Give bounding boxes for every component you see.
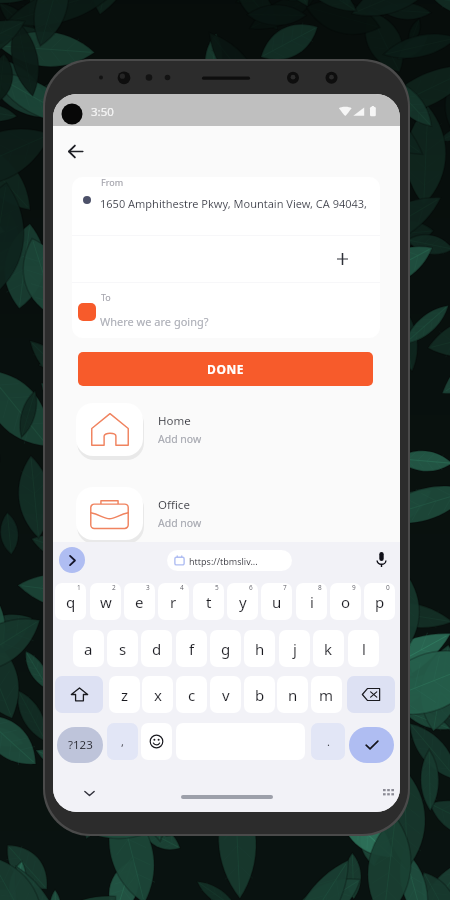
button[interactable]: Emoji	[141, 723, 172, 760]
staticText: 4	[180, 583, 184, 592]
button[interactable]: w	[90, 583, 121, 620]
button[interactable]: h	[244, 630, 275, 667]
staticText: To	[101, 291, 111, 303]
staticText: y	[239, 592, 247, 612]
staticText: r	[170, 592, 177, 612]
staticText: 5	[215, 583, 219, 592]
button[interactable]: DONE	[78, 352, 373, 386]
button[interactable]: Backspace	[347, 676, 395, 713]
button[interactable]: z	[109, 676, 140, 713]
staticText: l	[362, 639, 366, 659]
button[interactable]: s	[107, 630, 138, 667]
staticText: q	[66, 592, 76, 612]
button[interactable]: Office	[68, 478, 318, 549]
button[interactable]: Next suggestion	[59, 547, 85, 573]
staticText: Add now	[158, 432, 202, 446]
button[interactable]: e	[124, 583, 155, 620]
button[interactable]: p	[364, 583, 395, 620]
button[interactable]: g	[210, 630, 241, 667]
button[interactable]: x	[142, 676, 173, 713]
button[interactable]: d	[141, 630, 172, 667]
staticText: v	[222, 685, 230, 705]
button[interactable]: Shift	[55, 676, 103, 713]
button[interactable]: a	[73, 630, 104, 667]
button[interactable]: r	[158, 583, 189, 620]
staticText: 6	[249, 583, 253, 592]
staticText: Where we are going?	[100, 314, 209, 329]
button[interactable]: Add stop	[330, 247, 354, 271]
button[interactable]: k	[313, 630, 344, 667]
staticText: o	[341, 592, 351, 612]
staticText: ,	[121, 734, 124, 749]
button[interactable]: https://tbmsliv...	[167, 550, 292, 571]
staticText: f	[189, 639, 195, 659]
staticText: ?123	[68, 737, 93, 753]
button[interactable]: o	[330, 583, 361, 620]
staticText: j	[293, 639, 297, 659]
staticText: 0	[386, 583, 390, 592]
button[interactable]: .	[311, 723, 345, 760]
staticText: e	[135, 592, 144, 612]
staticText: 1	[77, 583, 81, 592]
staticText: 8	[318, 583, 322, 592]
staticText: m	[319, 685, 334, 705]
button[interactable]: y	[227, 583, 258, 620]
staticText: p	[375, 592, 385, 612]
button[interactable]: Home	[68, 394, 318, 465]
staticText: t	[206, 592, 212, 612]
button[interactable]: Back	[58, 134, 92, 168]
staticText: https://tbmsliv...	[189, 555, 258, 567]
button[interactable]: t	[193, 583, 224, 620]
staticText: Add now	[158, 516, 202, 530]
staticText: 2	[112, 583, 116, 592]
button[interactable]: Hide keyboard	[82, 786, 96, 800]
staticText: Office	[158, 497, 190, 513]
button[interactable]: b	[244, 676, 275, 713]
staticText: c	[188, 685, 196, 705]
other: Emoji	[149, 734, 164, 749]
button[interactable]: c	[176, 676, 207, 713]
button[interactable]: j	[279, 630, 310, 667]
staticText: 1650 Amphithestre Pkwy, Mountain View, C…	[100, 196, 368, 211]
other: Backspace	[362, 688, 380, 701]
staticText: a	[84, 639, 93, 659]
other: Keyboard layout	[383, 789, 394, 797]
other: Shift	[71, 687, 88, 702]
staticText: 3	[146, 583, 150, 592]
staticText: n	[288, 685, 298, 705]
button[interactable]: q	[55, 583, 86, 620]
button[interactable]: n	[277, 676, 308, 713]
staticText: 7	[283, 583, 287, 592]
staticText: .	[327, 734, 330, 749]
staticText: Home	[158, 413, 191, 429]
staticText: k	[324, 639, 333, 659]
staticText: x	[154, 685, 162, 705]
staticText: i	[310, 592, 314, 612]
staticText: 3:50	[91, 104, 114, 120]
button[interactable]: m	[311, 676, 342, 713]
staticText: d	[152, 639, 162, 659]
button[interactable]: u	[261, 583, 292, 620]
staticText: s	[119, 639, 127, 659]
button[interactable]: l	[348, 630, 379, 667]
button[interactable]: Enter	[349, 727, 394, 763]
staticText: z	[121, 685, 129, 705]
staticText: 9	[352, 583, 356, 592]
button[interactable]: ,	[107, 723, 138, 760]
staticText: g	[221, 639, 231, 659]
button[interactable]: ?123	[57, 727, 103, 763]
staticText: From	[101, 177, 124, 188]
staticText: b	[255, 685, 265, 705]
button[interactable]: v	[210, 676, 241, 713]
staticText: DONE	[207, 361, 245, 377]
staticText: w	[100, 592, 112, 612]
button[interactable]: i	[296, 583, 327, 620]
button[interactable]: Voice input	[370, 548, 392, 570]
button[interactable]: f	[176, 630, 207, 667]
staticText: h	[255, 639, 265, 659]
staticText: u	[272, 592, 282, 612]
